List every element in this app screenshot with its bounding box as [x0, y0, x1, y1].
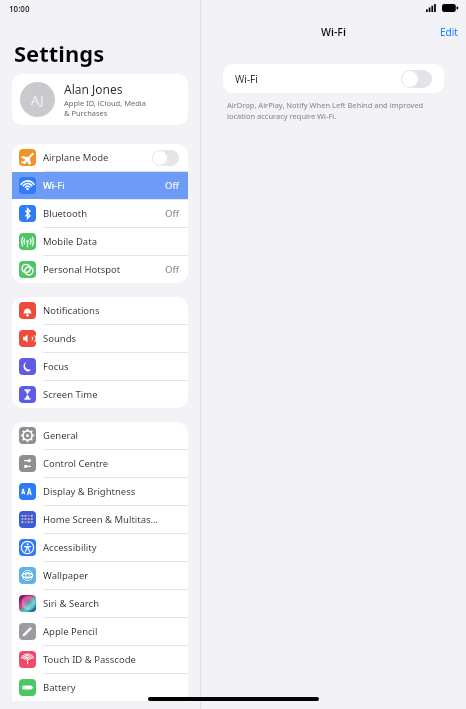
staticText: Siri & Search	[43, 597, 179, 610]
button[interactable]: Airplane Mode	[12, 144, 188, 171]
staticText: Settings	[14, 38, 105, 68]
staticText: Personal Hotspot	[43, 263, 165, 276]
button[interactable]: Wi-Fi	[223, 64, 444, 93]
button[interactable]: Home Screen & Multitas…	[12, 506, 188, 533]
button[interactable]: Screen Time	[12, 381, 188, 408]
staticText: Alan Jones	[64, 81, 123, 97]
staticText: Sounds	[43, 332, 179, 345]
button[interactable]: Wi-Fi	[12, 172, 188, 199]
staticText: Off	[165, 207, 179, 220]
button[interactable]: Wi-Fi toggle	[401, 70, 432, 88]
button[interactable]: Control Centre	[12, 450, 188, 477]
button[interactable]: Mobile Data	[12, 228, 188, 255]
button[interactable]: Airplane Mode toggle	[152, 150, 179, 166]
button[interactable]: Notifications	[12, 297, 188, 324]
button[interactable]: Wallpaper	[12, 562, 188, 589]
staticText: Bluetooth	[43, 207, 165, 220]
staticText: Off	[165, 263, 179, 276]
staticText: Display & Brightness	[43, 485, 179, 498]
staticText: Wi-Fi	[43, 179, 165, 192]
button[interactable]: Focus	[12, 353, 188, 380]
button[interactable]: Touch ID & Passcode	[12, 646, 188, 673]
staticText: Airplane Mode	[43, 151, 152, 164]
button[interactable]: Sounds	[12, 325, 188, 352]
staticText: Edit	[440, 25, 458, 39]
staticText: Home Screen & Multitas…	[43, 513, 179, 526]
button[interactable]: Edit	[432, 22, 466, 42]
staticText: Apple Pencil	[43, 625, 179, 638]
staticText: AJ	[31, 91, 44, 109]
staticText: 10:00	[9, 3, 30, 14]
staticText: Wi-Fi	[235, 72, 401, 86]
button[interactable]: Siri & Search	[12, 590, 188, 617]
button[interactable]: Apple Pencil	[12, 618, 188, 645]
button[interactable]: Battery	[12, 674, 188, 701]
staticText: Wi-Fi	[321, 25, 346, 39]
staticText: AirDrop, AirPlay, Notify When Left Behin…	[227, 100, 424, 121]
button[interactable]: Personal Hotspot	[12, 256, 188, 283]
staticText: Touch ID & Passcode	[43, 653, 179, 666]
staticText: Mobile Data	[43, 235, 179, 248]
staticText: Accessibility	[43, 541, 179, 554]
button[interactable]: AJ	[12, 74, 188, 125]
staticText: Screen Time	[43, 388, 179, 401]
button[interactable]: Bluetooth	[12, 200, 188, 227]
button[interactable]: Display & Brightness	[12, 478, 188, 505]
staticText: General	[43, 429, 179, 442]
staticText: Apple ID, iCloud, Media & Purchases	[64, 98, 146, 118]
staticText: Wallpaper	[43, 569, 179, 582]
staticText: Control Centre	[43, 457, 179, 470]
staticText: Off	[165, 179, 179, 192]
button[interactable]: General	[12, 422, 188, 449]
staticText: Battery	[43, 681, 179, 694]
button[interactable]: Accessibility	[12, 534, 188, 561]
staticText: Notifications	[43, 304, 179, 317]
staticText: Focus	[43, 360, 179, 373]
